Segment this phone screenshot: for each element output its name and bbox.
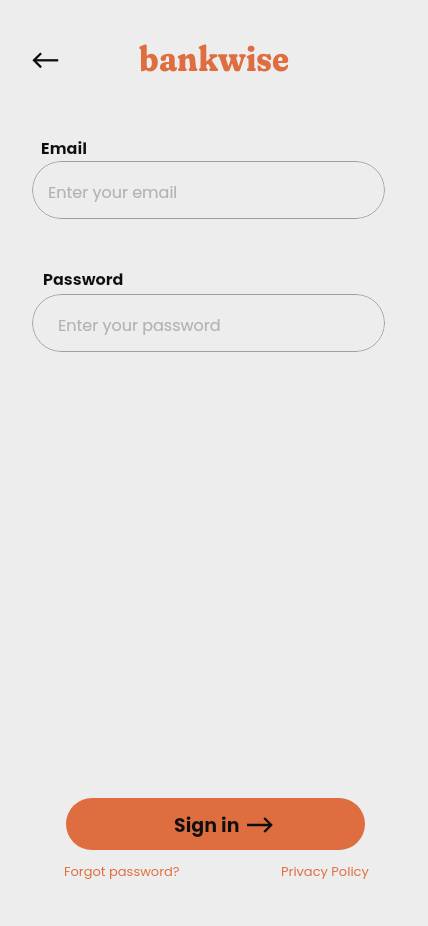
button[interactable]: Enter your password <box>32 294 385 352</box>
button[interactable]: Back <box>22 36 70 84</box>
button[interactable]: Privacy Policy <box>281 862 369 880</box>
staticText: Privacy Policy <box>281 862 369 880</box>
staticText: Enter your password <box>58 314 221 336</box>
button[interactable]: Forgot password? <box>64 862 180 880</box>
button[interactable]: Enter your email <box>32 161 385 219</box>
staticText: Sign in <box>174 812 240 839</box>
button[interactable]: Sign in <box>66 798 365 850</box>
staticText: Enter your email <box>48 181 178 203</box>
staticText: Email <box>41 137 87 159</box>
staticText: Password <box>43 268 124 290</box>
staticText: Forgot password? <box>64 862 180 880</box>
